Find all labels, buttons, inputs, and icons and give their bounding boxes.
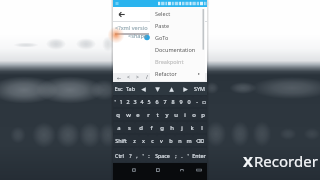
button[interactable]: Home xyxy=(153,165,163,175)
button[interactable]: f xyxy=(146,122,157,133)
button[interactable]: Back xyxy=(129,165,139,175)
button[interactable]: ; xyxy=(173,148,179,162)
button[interactable]: GoTo xyxy=(150,31,205,43)
button[interactable]: x xyxy=(139,135,148,146)
button[interactable]: Shift xyxy=(113,135,129,146)
button[interactable]: u xyxy=(171,109,180,120)
button[interactable]: m xyxy=(184,135,193,146)
button[interactable]: s xyxy=(124,122,135,133)
staticText: p xyxy=(201,111,205,119)
button[interactable]: ▫ xyxy=(201,96,207,107)
button[interactable]: Select xyxy=(150,7,205,19)
button[interactable]: 0 xyxy=(185,96,193,107)
button[interactable]: d xyxy=(135,122,146,133)
button[interactable]: : xyxy=(146,148,152,162)
button[interactable]: Documentation xyxy=(150,43,205,55)
button[interactable]: a xyxy=(113,122,124,133)
button[interactable]: h xyxy=(167,122,177,133)
button[interactable]: p xyxy=(198,109,207,120)
staticText: c xyxy=(151,137,154,144)
staticText: Tab xyxy=(126,85,135,92)
button[interactable]: 1 xyxy=(117,96,124,107)
staticText: o xyxy=(192,111,196,119)
staticText: j xyxy=(181,124,183,132)
button[interactable]: Enter xyxy=(191,148,207,162)
button[interactable]: ' xyxy=(113,96,117,107)
button[interactable]: 6 xyxy=(153,96,161,107)
button[interactable]: ← xyxy=(115,73,124,82)
button[interactable]: b xyxy=(166,135,175,146)
staticText: < xyxy=(127,74,130,81)
button[interactable]: ▶ xyxy=(178,82,192,95)
button[interactable]: < xyxy=(124,73,133,82)
staticText: h xyxy=(170,124,174,132)
staticText: SYM xyxy=(194,85,205,92)
button[interactable]: > xyxy=(133,73,142,82)
button[interactable]: z xyxy=(129,135,139,146)
button[interactable]: q xyxy=(113,109,123,120)
staticText: b xyxy=(169,137,173,144)
button[interactable]: Ctrl xyxy=(113,148,126,162)
button[interactable]: Paste xyxy=(150,19,205,31)
button[interactable]: 7 xyxy=(161,96,169,107)
button[interactable]: ⌫ xyxy=(193,135,207,146)
button[interactable]: 5 xyxy=(145,96,153,107)
staticText: Documentation xyxy=(155,46,196,53)
staticText: k xyxy=(190,124,194,132)
button[interactable]: Switch keyboard xyxy=(194,165,204,175)
staticText: Recorder xyxy=(254,151,318,171)
button[interactable]: i xyxy=(180,109,189,120)
button[interactable]: k xyxy=(187,122,197,133)
button[interactable]: . xyxy=(179,148,185,162)
button[interactable]: 2 xyxy=(124,96,131,107)
button[interactable]: ◀ xyxy=(136,82,150,95)
button[interactable]: g xyxy=(157,122,167,133)
button[interactable]: e xyxy=(133,109,143,120)
button[interactable]: SYM xyxy=(192,82,207,95)
staticText: ? xyxy=(129,152,132,159)
button[interactable]: Refactor xyxy=(150,67,205,79)
staticText: w xyxy=(126,111,131,119)
staticText: <?xml versio xyxy=(115,24,148,32)
staticText: Refactor xyxy=(155,70,177,77)
button[interactable]: ▲ xyxy=(164,82,178,95)
button[interactable]: j xyxy=(177,122,187,133)
button[interactable]: ▼ xyxy=(150,82,164,95)
button[interactable]: 9 xyxy=(177,96,185,107)
staticText: Ctrl xyxy=(115,152,124,159)
button[interactable]: ? xyxy=(126,148,134,162)
staticText: g xyxy=(160,124,164,132)
button[interactable]: 3 xyxy=(131,96,138,107)
button[interactable]: ' xyxy=(140,148,146,162)
staticText: r xyxy=(147,111,150,119)
button[interactable]: o xyxy=(189,109,198,120)
button[interactable]: - xyxy=(193,96,201,107)
button[interactable]: Space xyxy=(152,148,173,162)
button[interactable]: r xyxy=(143,109,153,120)
button[interactable]: Back xyxy=(113,7,129,21)
staticText: 1 xyxy=(119,98,123,105)
button[interactable]: Esc xyxy=(113,82,124,95)
button[interactable]: v xyxy=(157,135,166,146)
staticText: 8 xyxy=(171,98,175,105)
staticText: ▶ xyxy=(183,86,188,92)
button[interactable]: t xyxy=(153,109,162,120)
button[interactable]: 4 xyxy=(138,96,145,107)
button[interactable]: y xyxy=(162,109,171,120)
button[interactable]: Tab xyxy=(124,82,136,95)
button[interactable]: 8 xyxy=(169,96,177,107)
button[interactable]: n xyxy=(175,135,184,146)
button[interactable]: / xyxy=(142,73,151,82)
staticText: 7 xyxy=(163,98,167,105)
button[interactable]: w xyxy=(123,109,133,120)
button[interactable]: c xyxy=(148,135,157,146)
staticText: Space xyxy=(155,152,170,159)
staticText: ' xyxy=(187,152,189,159)
button[interactable]: l xyxy=(197,122,207,133)
button[interactable]: Breakpoint xyxy=(150,55,205,67)
button[interactable]: , xyxy=(134,148,140,162)
button[interactable]: ' xyxy=(185,148,191,162)
staticText: m xyxy=(186,137,192,144)
button[interactable]: Recents xyxy=(177,165,187,175)
staticText: v xyxy=(160,137,163,144)
